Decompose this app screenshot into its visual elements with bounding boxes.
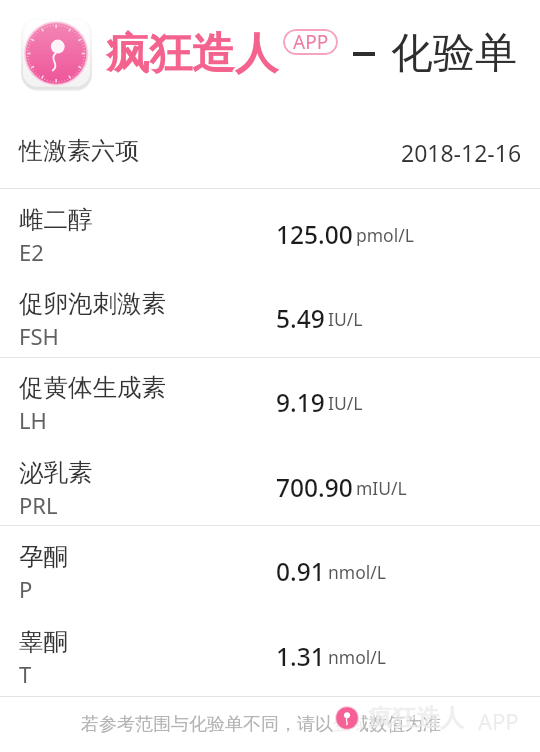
- button[interactable]: 睾酮: [0, 612, 540, 696]
- staticText: nmol/L: [328, 645, 386, 669]
- staticText: 泌乳素: [19, 457, 93, 488]
- staticText: 疯狂造人: [106, 27, 278, 81]
- button[interactable]: 雌二醇: [0, 190, 540, 274]
- staticText: 疯狂造人: [368, 703, 464, 733]
- staticText: 性激素六项: [19, 136, 139, 166]
- staticText: 促卵泡刺激素: [19, 288, 166, 319]
- staticText: 化验单: [391, 27, 517, 80]
- staticText: APP: [293, 29, 329, 55]
- button[interactable]: 疯狂造人 app icon: [21, 18, 92, 89]
- button[interactable]: 性激素六项: [0, 105, 540, 188]
- staticText: IU/L: [328, 307, 363, 331]
- staticText: IU/L: [328, 391, 363, 415]
- staticText: 疯狂造人: [368, 703, 464, 733]
- staticText: 2018-12-16: [401, 137, 522, 168]
- staticText: APP: [478, 706, 519, 736]
- button[interactable]: APP: [283, 29, 338, 55]
- staticText: T: [19, 659, 32, 689]
- button[interactable]: 促卵泡刺激素: [0, 274, 540, 358]
- staticText: 促黄体生成素: [19, 372, 166, 403]
- staticText: 孕酮: [19, 541, 68, 572]
- staticText: FSH: [19, 321, 59, 351]
- staticText: LH: [19, 405, 47, 435]
- staticText: 0.91: [276, 555, 325, 588]
- button[interactable]: 孕酮: [0, 527, 540, 611]
- staticText: 1.31: [276, 640, 325, 673]
- staticText: 5.49: [276, 302, 325, 335]
- staticText: nmol/L: [328, 560, 386, 584]
- staticText: mIU/L: [356, 476, 407, 500]
- staticText: 若参考范围与化验单不同，请以金域数值为准: [81, 713, 441, 736]
- staticText: 9.19: [276, 386, 325, 419]
- staticText: pmol/L: [356, 223, 414, 247]
- staticText: 睾酮: [19, 626, 68, 657]
- button[interactable]: 泌乳素: [0, 443, 540, 527]
- staticText: E2: [19, 237, 44, 267]
- staticText: P: [19, 574, 33, 604]
- staticText: PRL: [19, 490, 58, 520]
- button[interactable]: 促黄体生成素: [0, 358, 540, 442]
- staticText: 125.00: [276, 218, 353, 251]
- staticText: 700.90: [276, 471, 353, 504]
- staticText: 雌二醇: [19, 204, 93, 235]
